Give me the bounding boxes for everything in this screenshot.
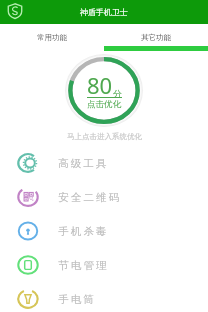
staticText: 节电管理 [58,259,109,272]
staticText: 马上点击进入系统优化 [67,132,142,141]
button[interactable]: 常用功能 [0,24,104,51]
staticText: 点击优化 [87,99,121,110]
staticText: 80 [87,70,113,100]
button[interactable]: 手机杀毒 [0,214,208,248]
button[interactable]: 安全二维码 [0,180,208,214]
staticText: 安全二维码 [58,191,122,204]
staticText: 手机杀毒 [58,225,109,238]
button[interactable]: 节电管理 [0,248,208,282]
other: Logo [7,3,23,19]
staticText: 其它功能 [141,33,171,42]
staticText: 手电筒 [58,293,97,306]
button[interactable]: 其它功能 [104,24,208,51]
staticText: 神盾手机卫士 [80,7,128,17]
staticText: 高级工具 [58,157,109,170]
staticText: 常用功能 [37,33,67,42]
button[interactable]: 手电筒 [0,282,208,312]
button[interactable]: 80 [65,54,143,127]
button[interactable]: 高级工具 [0,146,208,180]
staticText: 分 [113,88,122,99]
